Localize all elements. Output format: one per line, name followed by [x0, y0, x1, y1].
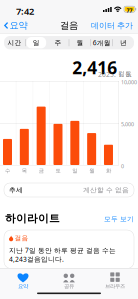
staticText: 걸음 [14, 234, 28, 242]
staticText: 목 [22, 167, 27, 174]
staticText: 브라우즈 [105, 283, 125, 290]
button[interactable]: 데이터 추가 [88, 18, 138, 33]
button[interactable]: 년 [113, 36, 134, 49]
button[interactable]: 요약 [0, 271, 46, 291]
staticText: 요약 [10, 20, 28, 31]
staticText: 데이터 추가 [91, 21, 133, 30]
staticText: 화 [106, 167, 111, 174]
staticText: 걸음 [60, 20, 78, 31]
staticText: 월 [76, 39, 83, 47]
staticText: 토 [55, 167, 60, 174]
button[interactable]: 공유 [46, 271, 92, 291]
staticText: 모두 보기 [104, 215, 134, 223]
staticText: 일 [33, 39, 40, 47]
button[interactable]: 브라우즈 [92, 271, 138, 291]
staticText: 6개월 [93, 38, 111, 47]
button[interactable]: 월 [69, 36, 90, 49]
staticText: 2,416 [72, 56, 117, 79]
button[interactable]: 주 [47, 36, 69, 49]
staticText: 걸음 [118, 70, 132, 78]
staticText: 10,000 [121, 79, 137, 86]
staticText: 추세 [9, 186, 23, 194]
button[interactable]: 모두 보기 [102, 213, 136, 225]
button[interactable]: 요약 [0, 18, 31, 33]
staticText: 일 [72, 167, 77, 174]
staticText: 7:42 [16, 5, 34, 17]
button[interactable]: 6개월 [91, 36, 112, 49]
staticText: 공유 [64, 283, 74, 290]
staticText: 월 [89, 167, 94, 174]
button[interactable]: 시간 [4, 36, 25, 49]
staticText: 계산할 수 없음 [83, 186, 129, 194]
staticText: 하이라이트 [5, 212, 60, 225]
button[interactable]: 일 [26, 36, 47, 49]
staticText: 수 [5, 167, 10, 174]
staticText: 0 [121, 163, 124, 170]
button[interactable]: 추세 [4, 183, 134, 197]
staticText: 77 [126, 7, 132, 14]
button[interactable]: 걸음 [4, 230, 134, 268]
staticText: 요약 [18, 283, 28, 290]
staticText: 시간 [7, 39, 21, 47]
staticText: 주 [55, 39, 62, 47]
staticText: 2025. 1. 9. [98, 70, 132, 79]
staticText: 금 [39, 167, 44, 174]
staticText: 년 [120, 39, 127, 47]
staticText: 지난 7일 동안 하루 평균 걸음 수는 4,243걸음입니다. [9, 246, 116, 263]
staticText: 5,000 [121, 121, 134, 128]
